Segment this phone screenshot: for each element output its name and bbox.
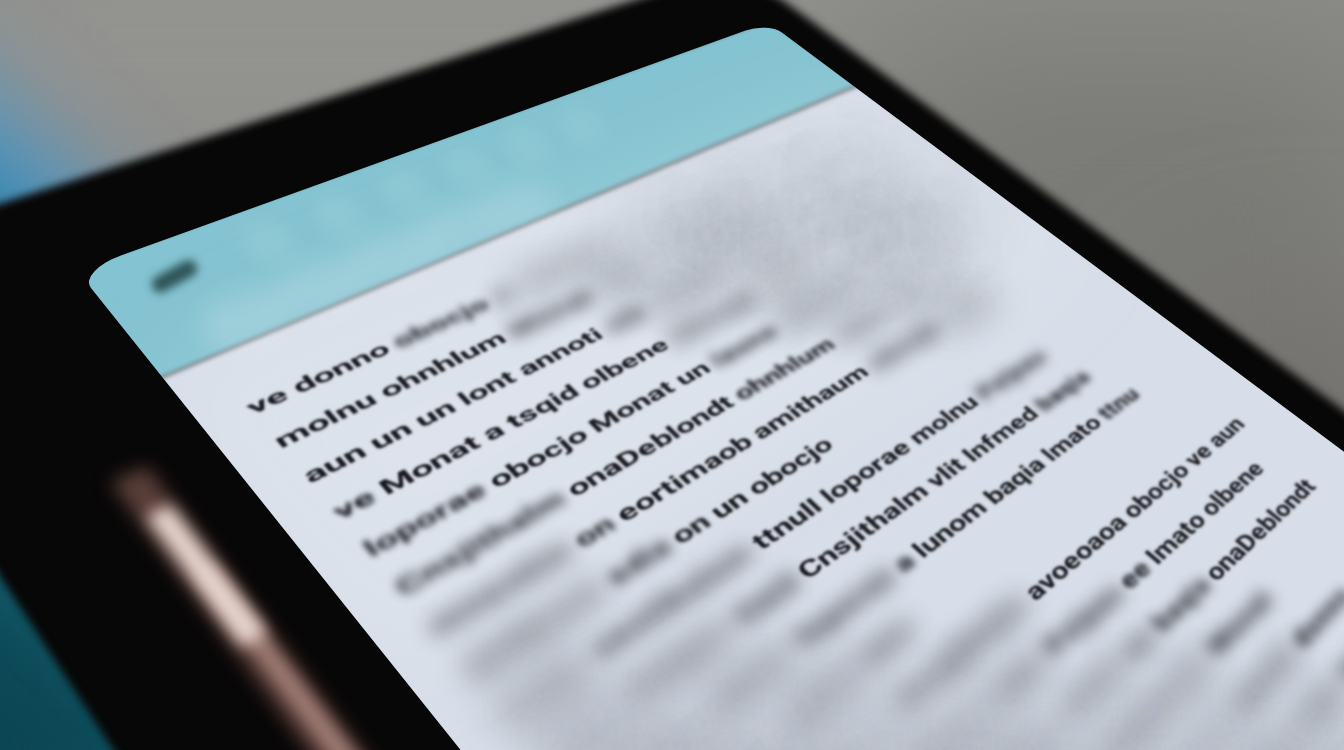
button[interactable]: Phone displaying an article xyxy=(0,0,1344,750)
